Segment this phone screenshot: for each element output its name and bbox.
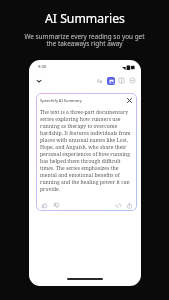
staticText: Speechify AI Summary xyxy=(40,98,82,103)
button[interactable]: Close xyxy=(125,96,134,105)
button[interactable]: Copy link xyxy=(114,201,122,209)
staticText: 9:30 xyxy=(38,64,47,70)
button[interactable]: Book xyxy=(117,76,126,85)
staticText: We summarize every reading so you get th… xyxy=(24,32,145,48)
staticText: Aa xyxy=(97,78,103,84)
staticText: The text is a three-part documentary ser… xyxy=(40,109,133,193)
button[interactable]: Thumbs up xyxy=(40,201,48,209)
button[interactable]: Aa xyxy=(95,76,104,85)
button[interactable]: Thumbs down xyxy=(52,201,60,209)
button[interactable]: AI Summary xyxy=(106,76,115,85)
button[interactable]: Collapse xyxy=(34,76,43,85)
button[interactable]: Share xyxy=(125,201,133,209)
button[interactable]: More xyxy=(128,76,137,85)
staticText: AI Summaries xyxy=(45,10,125,27)
